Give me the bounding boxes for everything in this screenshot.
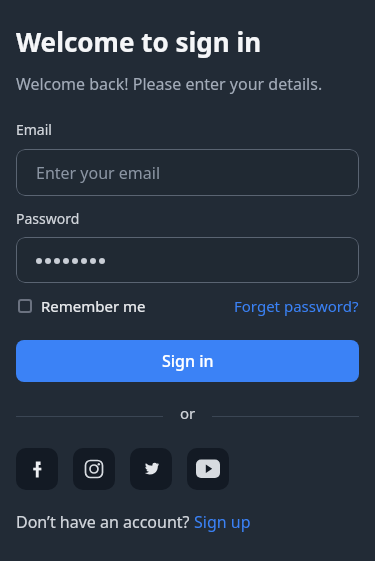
staticText: Don’t have an account? xyxy=(16,511,194,533)
button[interactable] xyxy=(16,237,359,283)
staticText: Welcome to sign in xyxy=(16,24,262,59)
button[interactable] xyxy=(130,448,172,490)
button[interactable] xyxy=(73,448,115,490)
staticText: Remember me xyxy=(41,296,146,316)
button[interactable] xyxy=(187,448,229,490)
staticText: Welcome back! Please enter your details. xyxy=(16,73,323,95)
staticText: Password xyxy=(16,209,80,228)
staticText: Sign in xyxy=(162,350,214,372)
button[interactable]: Enter your email xyxy=(16,149,359,196)
button[interactable]: Don’t have an account? xyxy=(16,511,251,533)
button[interactable] xyxy=(16,448,58,490)
button[interactable]: Forget password? xyxy=(234,296,359,316)
staticText: Enter your email xyxy=(36,162,161,184)
button[interactable]: Sign in xyxy=(16,340,359,382)
staticText: Sign up xyxy=(194,511,251,533)
button[interactable]: Remember me xyxy=(16,296,146,316)
staticText: or xyxy=(180,403,196,423)
staticText: Email xyxy=(16,120,52,139)
